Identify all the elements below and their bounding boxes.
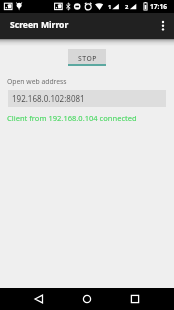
button[interactable]: Home xyxy=(68,288,106,310)
button[interactable]: Recents xyxy=(116,288,154,310)
staticText: 2 xyxy=(125,3,129,11)
button[interactable]: 192.168.0.102:8081 xyxy=(8,90,166,107)
staticText: Open web address xyxy=(7,77,67,86)
staticText: Client from 192.168.0.104 connected xyxy=(7,113,137,123)
staticText: 17:16 xyxy=(150,2,167,11)
button[interactable]: More options xyxy=(152,13,174,39)
staticText: 1 xyxy=(108,3,112,11)
staticText: STOP xyxy=(78,54,97,63)
staticText: 192.168.0.102:8081 xyxy=(12,93,85,104)
button[interactable]: STOP xyxy=(68,49,106,66)
button[interactable]: Back xyxy=(20,288,58,310)
staticText: Screen Mirror xyxy=(10,19,69,31)
